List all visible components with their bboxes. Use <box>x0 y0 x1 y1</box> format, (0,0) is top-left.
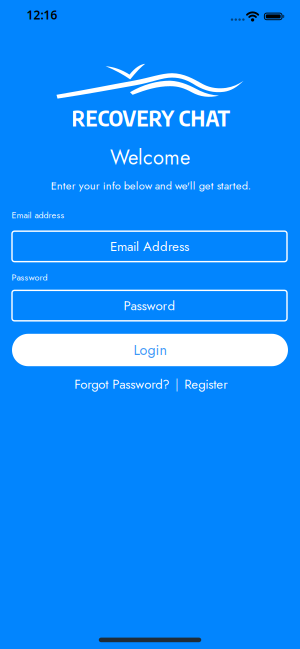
staticText: Password <box>123 296 175 315</box>
staticText: Register <box>184 375 227 394</box>
button[interactable]: Login <box>12 334 288 366</box>
button[interactable]: Password <box>12 290 287 321</box>
staticText: RECOVERY CHAT <box>71 104 229 131</box>
button[interactable]: Email Address <box>12 231 287 262</box>
staticText: Enter your info below and we'll get star… <box>51 178 251 194</box>
staticText: Welcome <box>110 143 190 172</box>
staticText: | <box>175 376 178 393</box>
staticText: Password <box>11 271 47 284</box>
staticText: Email Address <box>110 237 189 256</box>
staticText: 12:16 <box>26 7 57 23</box>
button[interactable]: Register <box>184 375 227 394</box>
staticText: Forgot Password? <box>74 375 169 394</box>
staticText: Email address <box>11 208 64 221</box>
button[interactable]: Forgot Password? <box>74 375 169 394</box>
staticText: Login <box>133 340 166 360</box>
